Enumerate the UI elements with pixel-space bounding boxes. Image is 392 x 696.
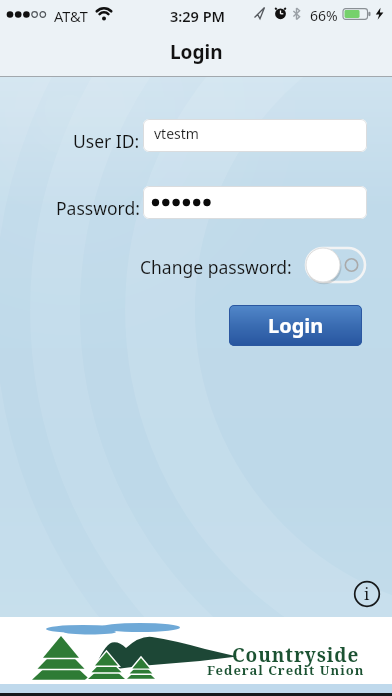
- staticText: AT&T: [54, 6, 88, 26]
- button[interactable]: i: [352, 579, 382, 609]
- staticText: i: [364, 582, 370, 605]
- staticText: 66%: [310, 6, 338, 25]
- button[interactable]: Login: [229, 305, 362, 346]
- staticText: Login: [170, 39, 223, 65]
- staticText: Password:: [56, 196, 140, 220]
- staticText: User ID:: [73, 129, 140, 153]
- button[interactable]: [143, 186, 367, 219]
- button[interactable]: Countryside: [0, 617, 392, 684]
- staticText: Change password:: [140, 255, 292, 279]
- staticText: 3:29 PM: [170, 6, 226, 26]
- staticText: Login: [268, 312, 324, 339]
- staticText: vtestm: [154, 124, 199, 143]
- button[interactable]: vtestm: [143, 119, 367, 152]
- button[interactable]: [303, 245, 369, 285]
- staticText: Countryside: [232, 642, 360, 668]
- staticText: Federal Credit Union: [207, 661, 365, 679]
